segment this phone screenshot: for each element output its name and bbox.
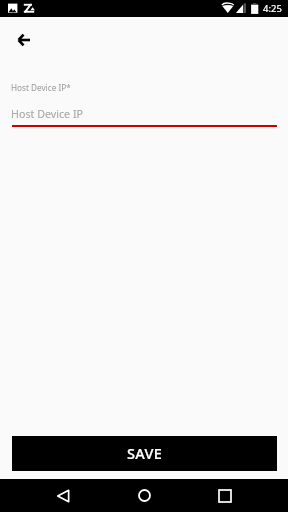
button[interactable]: Back (4, 20, 44, 60)
button[interactable]: Recents (208, 479, 242, 512)
button[interactable]: Back (46, 479, 80, 512)
staticText: 4:25 (263, 2, 282, 15)
staticText: Host Device IP* (11, 82, 71, 93)
button[interactable]: Home (127, 479, 161, 512)
staticText: SAVE (127, 443, 163, 463)
button[interactable]: Host Device IP (0, 107, 288, 122)
staticText: Host Device IP (11, 107, 83, 122)
button[interactable]: SAVE (12, 436, 277, 471)
